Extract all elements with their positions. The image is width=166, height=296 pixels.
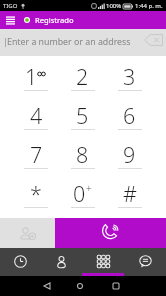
- staticText: 0: [73, 179, 86, 208]
- button[interactable]: 8: [59, 134, 106, 173]
- staticText: 7: [30, 140, 43, 169]
- button[interactable]: Backspace: [140, 29, 166, 51]
- button[interactable]: Open navigation menu: [0, 11, 21, 29]
- button[interactable]: Messages: [124, 248, 166, 276]
- button[interactable]: Dialpad: [82, 248, 124, 276]
- button[interactable]: *: [13, 173, 59, 212]
- button[interactable]: 6: [106, 95, 153, 134]
- button[interactable]: #: [106, 173, 153, 212]
- button[interactable]: 4: [13, 95, 59, 134]
- button[interactable]: Call: [55, 218, 166, 248]
- staticText: 8: [76, 140, 89, 169]
- button[interactable]: Recents: [0, 248, 41, 276]
- button[interactable]: 5: [59, 95, 106, 134]
- button[interactable]: Recent apps: [98, 276, 134, 296]
- button[interactable]: Home: [62, 276, 98, 296]
- staticText: *: [30, 179, 42, 208]
- staticText: +: [86, 181, 92, 195]
- button[interactable]: 2: [59, 56, 106, 95]
- button[interactable]: 1: [13, 56, 59, 95]
- staticText: 3: [123, 62, 136, 91]
- staticText: Enter a number or an address: [7, 36, 131, 48]
- button[interactable]: 9: [106, 134, 153, 173]
- staticText: 9: [123, 140, 136, 169]
- button[interactable]: Back: [32, 276, 62, 296]
- staticText: 2: [76, 62, 89, 91]
- staticText: 6: [123, 101, 136, 130]
- staticText: 5: [76, 101, 89, 130]
- button[interactable]: 7: [13, 134, 59, 173]
- staticText: 100%: [106, 2, 122, 10]
- button[interactable]: Add to contacts: [0, 218, 55, 248]
- staticText: 1:44 p. m.: [135, 2, 163, 10]
- staticText: 4: [30, 101, 43, 130]
- button[interactable]: Contacts: [41, 248, 82, 276]
- button[interactable]: 0: [59, 173, 106, 212]
- staticText: 1: [25, 62, 38, 91]
- staticText: TIGO: [3, 2, 18, 10]
- staticText: #: [123, 179, 137, 208]
- staticText: Registrado: [35, 15, 74, 25]
- button[interactable]: 3: [106, 56, 153, 95]
